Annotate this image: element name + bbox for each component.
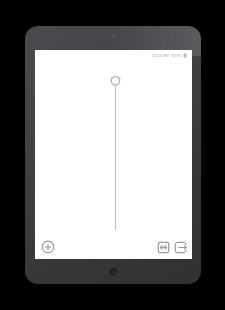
staticText: 100% bbox=[171, 53, 182, 58]
button[interactable]: Add point bbox=[41, 240, 55, 254]
button[interactable]: Adjust width bbox=[157, 241, 170, 254]
staticText: 10:23 PM bbox=[151, 53, 169, 58]
button[interactable]: Export bbox=[174, 241, 187, 254]
